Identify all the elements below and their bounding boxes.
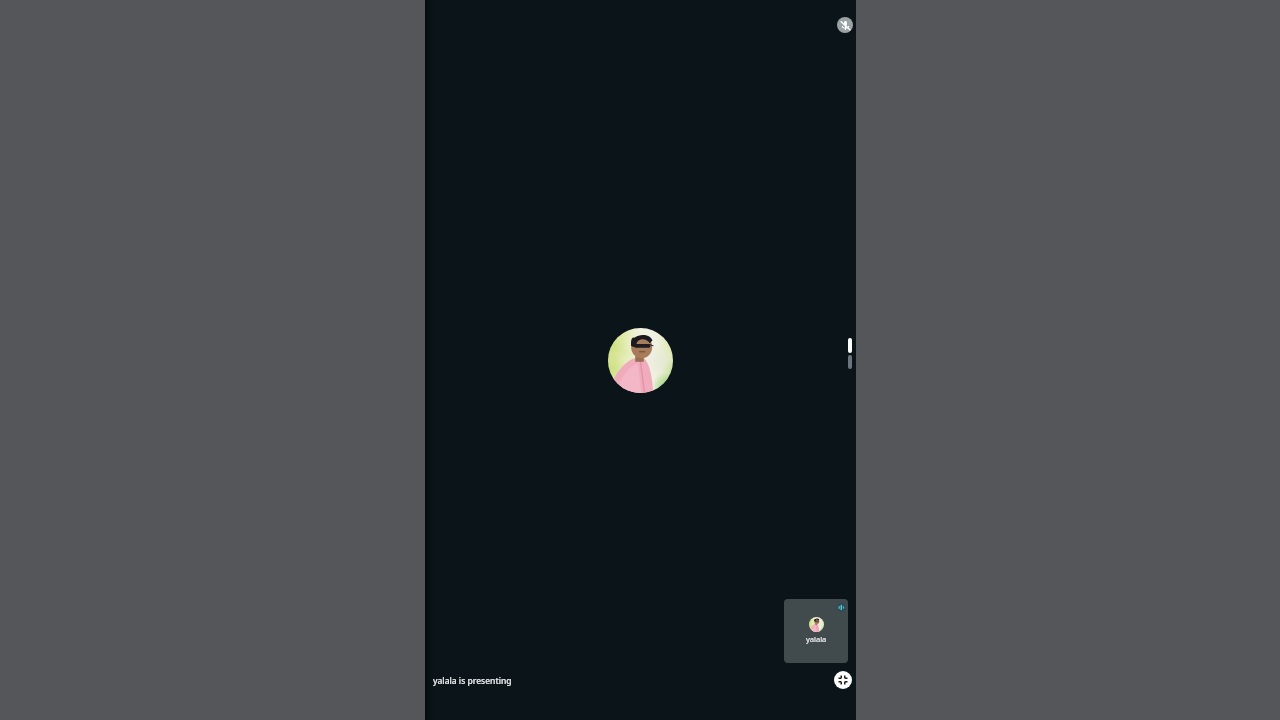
button[interactable]: Page indicator xyxy=(848,338,852,369)
staticText: yalala xyxy=(806,634,827,644)
button[interactable]: yalala video tile xyxy=(608,328,673,393)
button[interactable]: Microphone muted xyxy=(837,17,853,33)
button[interactable]: Exit fullscreen xyxy=(834,671,852,689)
staticText: yalala is presenting xyxy=(433,675,512,687)
button[interactable]: yalala xyxy=(784,599,848,663)
